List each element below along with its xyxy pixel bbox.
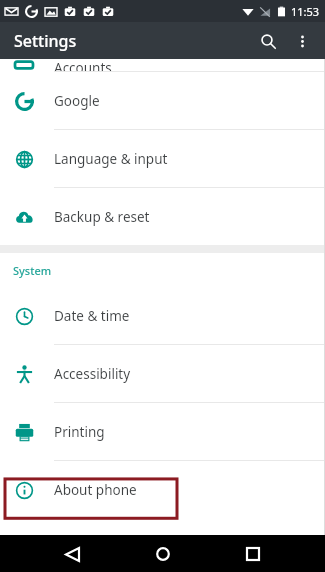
staticText: Settings [14, 30, 77, 52]
staticText: Language & input [54, 150, 168, 168]
button[interactable]: Google [0, 72, 325, 129]
staticText: Date & time [54, 307, 130, 325]
button[interactable]: Language & input [0, 130, 325, 187]
staticText: 11:53 [291, 4, 320, 19]
staticText: Printing [54, 423, 105, 441]
staticText: Google [54, 92, 100, 110]
staticText: Backup & reset [54, 208, 150, 226]
button[interactable]: Home [145, 536, 181, 572]
button[interactable]: Printing [0, 403, 325, 460]
button[interactable]: Search [253, 26, 283, 56]
button[interactable]: Backup & reset [0, 188, 325, 245]
button[interactable]: Accessibility [0, 345, 325, 402]
button[interactable]: Recent apps [235, 536, 271, 572]
button[interactable]: Accounts [0, 59, 325, 71]
staticText: Accounts [54, 59, 112, 71]
staticText: About phone [54, 481, 137, 499]
button[interactable]: More options [287, 26, 317, 56]
button[interactable]: Back [54, 536, 90, 572]
button[interactable]: About phone [0, 461, 325, 518]
staticText: System [13, 263, 52, 278]
staticText: Accessibility [54, 365, 131, 383]
button[interactable]: Date & time [0, 287, 325, 344]
